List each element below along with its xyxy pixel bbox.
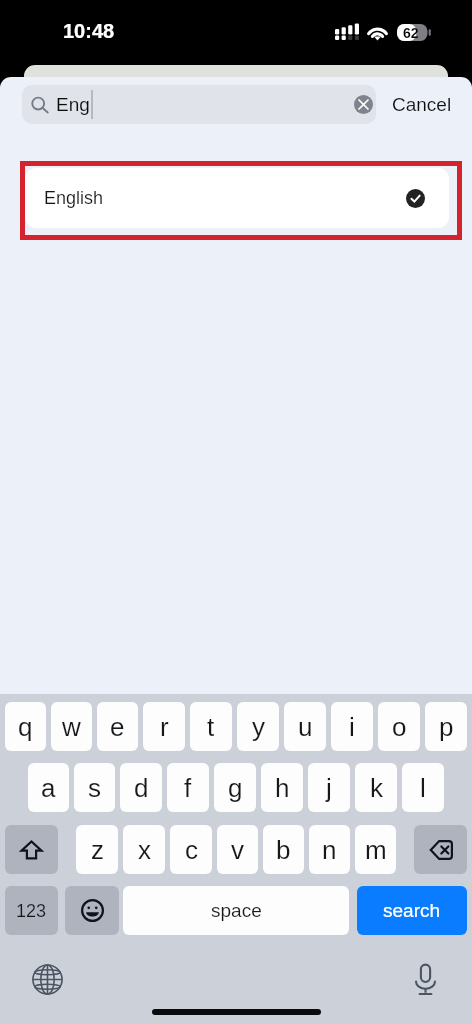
button[interactable]: o	[378, 702, 420, 751]
button[interactable]: s	[74, 763, 115, 812]
button[interactable]: v	[217, 825, 258, 874]
staticText: p	[439, 712, 454, 741]
button[interactable]: Shift	[5, 825, 58, 874]
staticText: u	[298, 712, 313, 741]
staticText: 123	[16, 901, 47, 921]
button[interactable]: z	[76, 825, 118, 874]
staticText: 62	[403, 25, 419, 41]
button[interactable]: a	[28, 763, 69, 812]
staticText: Eng	[56, 94, 90, 115]
staticText: w	[62, 712, 81, 741]
staticText: v	[231, 835, 244, 864]
button[interactable]: Dictation	[408, 962, 442, 996]
button[interactable]: p	[425, 702, 467, 751]
button[interactable]: search	[357, 886, 467, 935]
staticText: e	[110, 712, 125, 741]
button[interactable]: Emoji keyboard	[65, 886, 119, 935]
staticText: Cancel	[392, 94, 452, 115]
staticText: n	[322, 835, 337, 864]
button[interactable]: w	[51, 702, 92, 751]
button[interactable]: Cancel	[392, 85, 452, 124]
staticText: x	[138, 835, 151, 864]
staticText: g	[228, 773, 243, 802]
button[interactable]: h	[261, 763, 303, 812]
staticText: i	[349, 712, 355, 741]
staticText: a	[41, 773, 56, 802]
button[interactable]: Change keyboard	[30, 962, 64, 996]
button[interactable]: g	[214, 763, 256, 812]
button[interactable]: c	[170, 825, 212, 874]
button[interactable]: Clear text	[354, 95, 373, 114]
button[interactable]: d	[120, 763, 162, 812]
staticText: b	[276, 835, 291, 864]
staticText: y	[252, 712, 265, 741]
staticText: c	[185, 835, 198, 864]
button[interactable]: j	[308, 763, 350, 812]
button[interactable]: f	[167, 763, 209, 812]
staticText: m	[365, 835, 387, 864]
staticText: k	[370, 773, 383, 802]
staticText: q	[18, 712, 33, 741]
staticText: r	[160, 712, 169, 741]
staticText: f	[184, 773, 192, 802]
button[interactable]: English	[25, 168, 449, 228]
staticText: search	[383, 900, 441, 921]
button[interactable]: Eng	[22, 85, 376, 124]
staticText: l	[420, 773, 426, 802]
button[interactable]: 123	[5, 886, 58, 935]
button[interactable]: y	[237, 702, 279, 751]
button[interactable]: t	[190, 702, 232, 751]
button[interactable]: space	[123, 886, 349, 935]
button[interactable]: n	[309, 825, 350, 874]
staticText: space	[211, 900, 262, 921]
button[interactable]: x	[123, 825, 165, 874]
button[interactable]: Backspace	[414, 825, 467, 874]
staticText: t	[207, 712, 215, 741]
button[interactable]: e	[97, 702, 138, 751]
staticText: j	[326, 773, 332, 802]
staticText: s	[88, 773, 101, 802]
staticText: 10:48	[63, 20, 115, 42]
button[interactable]: q	[5, 702, 46, 751]
button[interactable]: b	[263, 825, 304, 874]
button[interactable]: r	[143, 702, 185, 751]
button[interactable]: m	[355, 825, 396, 874]
staticText: o	[392, 712, 407, 741]
staticText: z	[91, 835, 104, 864]
staticText: d	[134, 773, 149, 802]
button[interactable]: u	[284, 702, 326, 751]
button[interactable]: l	[402, 763, 444, 812]
staticText: English	[44, 188, 104, 208]
button[interactable]: i	[331, 702, 373, 751]
staticText: h	[275, 773, 290, 802]
button[interactable]: k	[355, 763, 397, 812]
